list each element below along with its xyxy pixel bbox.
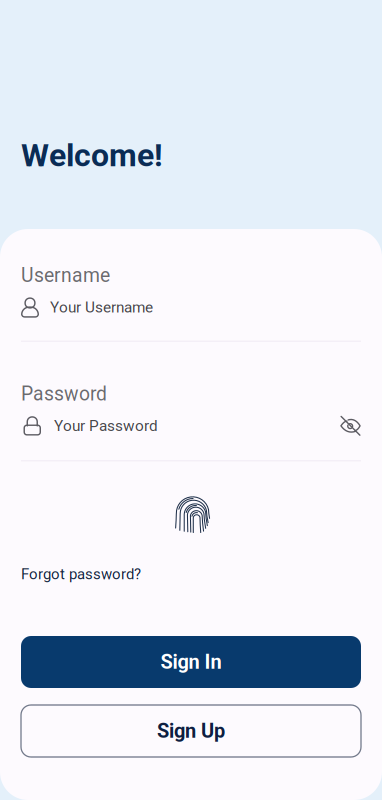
button[interactable]: Forgot password?: [21, 565, 141, 583]
staticText: Sign In: [160, 650, 221, 674]
staticText: Your Password: [54, 417, 158, 435]
button[interactable]: Sign In: [21, 636, 361, 688]
button[interactable]: Sign Up: [21, 705, 361, 757]
button[interactable]: Show password: [340, 415, 361, 436]
button[interactable]: Sign in with Touch ID: [171, 496, 211, 536]
staticText: Welcome!: [21, 136, 163, 174]
staticText: Forgot password?: [21, 565, 141, 583]
staticText: Your Username: [50, 298, 153, 316]
staticText: Username: [21, 264, 110, 287]
staticText: Password: [21, 383, 107, 405]
staticText: Sign Up: [157, 719, 225, 743]
